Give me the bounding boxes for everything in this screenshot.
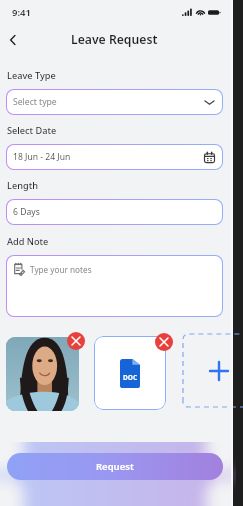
button[interactable]: Attached document: [94, 336, 166, 410]
staticText: 9:41: [12, 6, 31, 19]
staticText: Select Date: [7, 124, 57, 137]
staticText: Request: [96, 460, 134, 473]
staticText: 18 Jun - 24 Jun: [13, 151, 71, 163]
button[interactable]: Type your notes: [7, 256, 222, 316]
button[interactable]: Attached photo: [6, 337, 79, 411]
staticText: Length: [7, 179, 38, 192]
staticText: Add Note: [7, 235, 49, 248]
staticText: Select type: [13, 96, 57, 108]
button[interactable]: 6 Days: [7, 200, 222, 224]
staticText: Leave Request: [71, 31, 158, 48]
button[interactable]: 18 Jun - 24 Jun: [7, 145, 222, 169]
button[interactable]: Select type: [7, 90, 222, 114]
staticText: Type your notes: [30, 264, 92, 275]
button[interactable]: Request: [7, 453, 223, 480]
staticText: DOC: [123, 373, 138, 382]
staticText: Leave Type: [7, 69, 56, 82]
button[interactable]: Remove document: [155, 333, 173, 351]
button[interactable]: Remove photo: [67, 332, 85, 350]
staticText: 6 Days: [13, 206, 40, 218]
button[interactable]: Back: [3, 30, 23, 50]
button[interactable]: Add attachment: [183, 334, 243, 407]
